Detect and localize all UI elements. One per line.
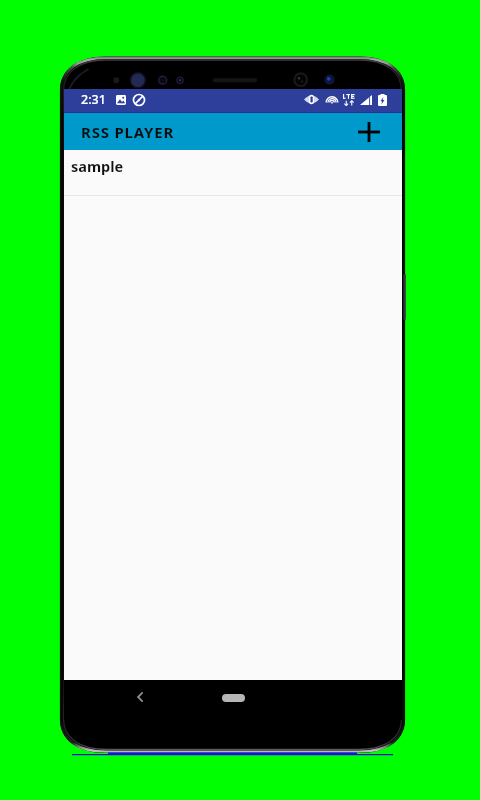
staticText: RSS PLAYER xyxy=(81,122,175,142)
button[interactable]: sample xyxy=(64,150,402,195)
staticText: 2:31 xyxy=(81,91,106,108)
button[interactable]: Back xyxy=(134,691,146,703)
button[interactable]: Home xyxy=(222,694,245,702)
button[interactable]: Add feed xyxy=(352,115,386,149)
staticText: sample xyxy=(71,156,124,176)
